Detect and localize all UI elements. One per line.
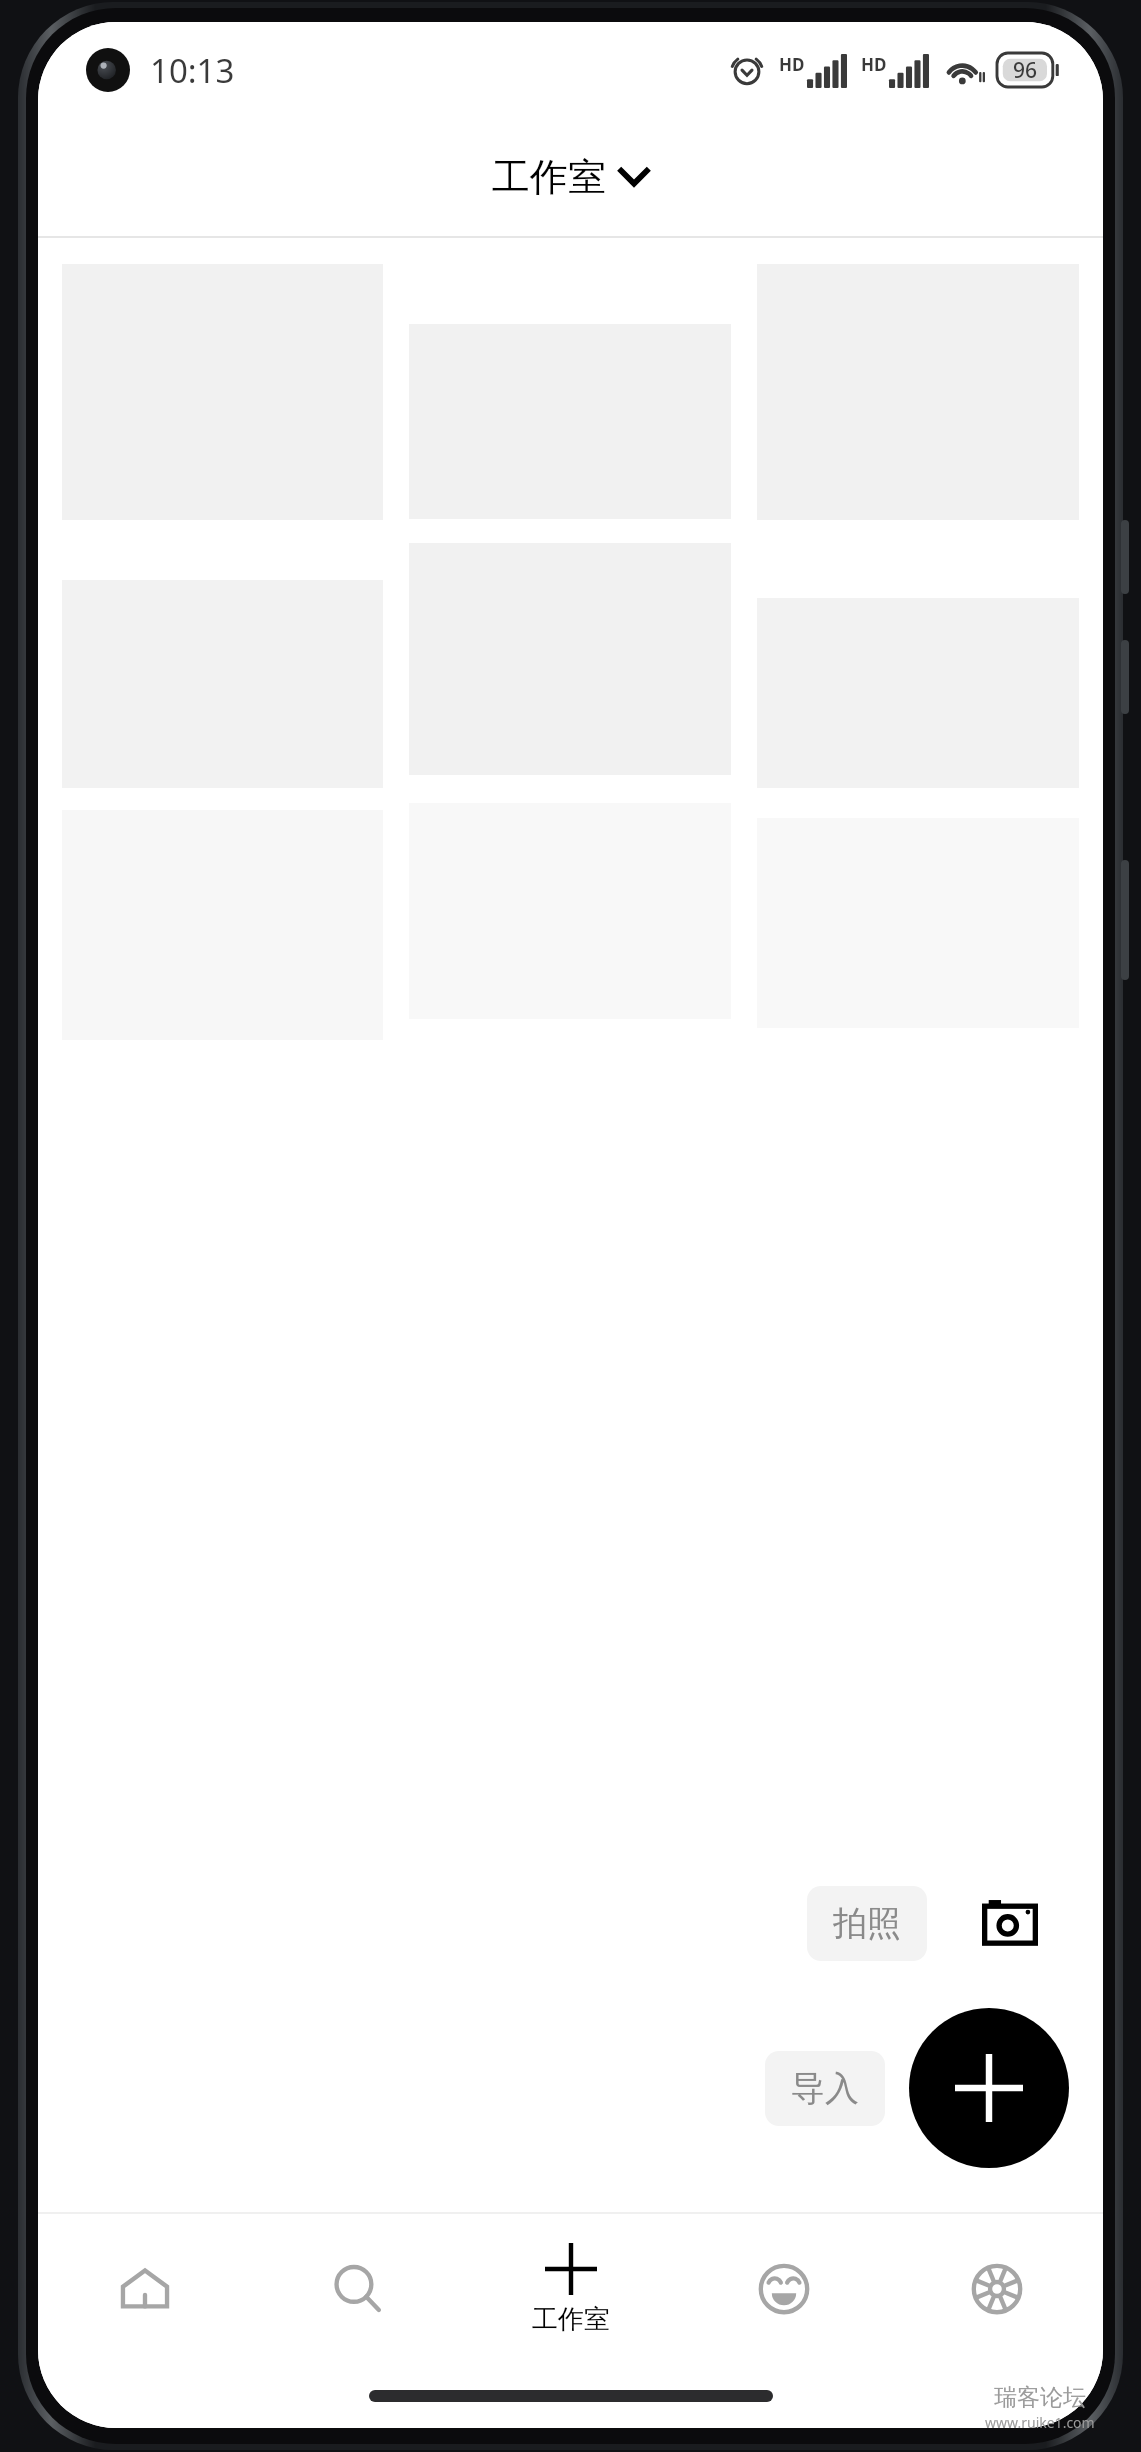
button[interactable]: 导入 [909, 2008, 1069, 2168]
staticText: 10:13 [150, 48, 235, 93]
button[interactable]: 导入 [765, 2051, 885, 2126]
staticText: 导入 [791, 2067, 859, 2110]
button[interactable]: 首页 [38, 2214, 251, 2364]
button[interactable]: 搜索 [251, 2214, 464, 2364]
staticText: 工作室 [492, 153, 606, 201]
button[interactable]: 工作室 [478, 145, 664, 209]
button[interactable]: 表情 [677, 2214, 890, 2364]
staticText: HD [779, 53, 805, 76]
button[interactable]: 拍照 [807, 1886, 927, 1961]
staticText: 瑞客论坛 [994, 2383, 1086, 2412]
staticText: 拍照 [833, 1902, 901, 1945]
staticText: 96 [1013, 56, 1038, 85]
staticText: HD [861, 53, 887, 76]
staticText: 工作室 [532, 2303, 610, 2336]
button[interactable]: 拍照 [951, 1864, 1069, 1982]
staticText: www.ruike1.com [985, 2413, 1095, 2432]
button[interactable]: 工作室 [464, 2214, 677, 2364]
button[interactable]: 我的 [890, 2214, 1103, 2364]
